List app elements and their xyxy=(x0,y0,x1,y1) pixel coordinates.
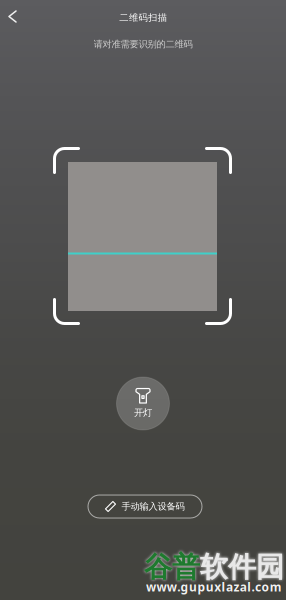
button[interactable]: 开灯 xyxy=(116,377,169,430)
button[interactable]: 手动输入设备码 xyxy=(88,495,202,518)
staticText: 软件园 xyxy=(200,550,284,584)
staticText: 开灯 xyxy=(134,407,152,418)
staticText: www.gupuxlazal.com xyxy=(146,579,282,595)
staticText: 手动输入设备码 xyxy=(121,501,184,512)
staticText: 二维码扫描 xyxy=(119,12,167,23)
staticText: 请对准需要识别的二维码 xyxy=(93,38,192,50)
staticText: 谷普 xyxy=(144,550,200,584)
button[interactable]: Back xyxy=(1,3,24,30)
